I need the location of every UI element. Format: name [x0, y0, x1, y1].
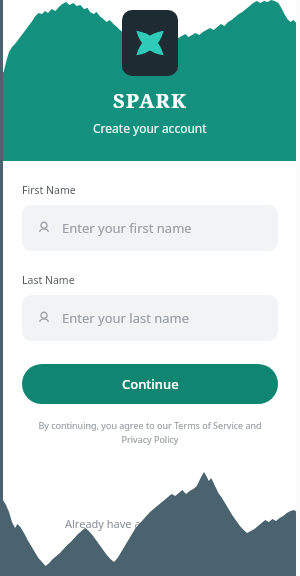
staticText: Create your account: [93, 120, 207, 136]
staticText: SPARK: [113, 87, 188, 114]
button[interactable]: Enter your last name: [22, 295, 278, 341]
staticText: First Name: [22, 183, 76, 197]
staticText: Continue: [122, 375, 179, 393]
staticText: Already have an account?: [65, 516, 199, 531]
button[interactable]: Continue: [22, 364, 278, 404]
staticText: Enter your first name: [62, 219, 192, 237]
staticText: Last Name: [22, 273, 75, 287]
button[interactable]: Already have an account?: [65, 516, 236, 531]
staticText: Enter your last name: [62, 309, 190, 327]
staticText: By continuing, you agree to our Terms of…: [24, 419, 276, 446]
button[interactable]: Enter your first name: [22, 205, 278, 251]
staticText: Sign In: [199, 516, 236, 531]
